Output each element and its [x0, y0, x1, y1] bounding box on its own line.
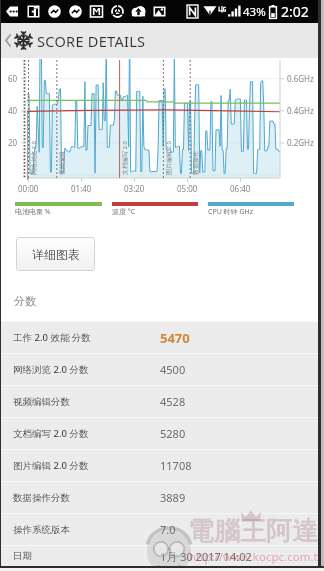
staticText: 1月 30 2017 14:02 — [160, 549, 252, 564]
button[interactable]: 视频编辑分数 — [1, 386, 318, 417]
button[interactable]: 数据操作分数 — [1, 482, 318, 513]
staticText: SCORE DETAILS — [37, 31, 146, 51]
button[interactable]: 文档编写 2.0 分数 — [1, 418, 318, 449]
staticText: 数据操作分数 — [13, 492, 70, 504]
staticText: 视频编辑分数 — [13, 396, 70, 408]
staticText: CPU 时钟 GHz — [208, 207, 253, 217]
staticText: 4528 — [160, 394, 186, 409]
staticText: 操作系统版本 — [13, 524, 70, 536]
staticText: 图片编辑 2.0 分数 — [13, 459, 89, 472]
button[interactable]: 网络浏览 2.0 分数 — [1, 354, 318, 385]
staticText: 7.0 — [160, 522, 176, 537]
staticText: 分数 — [14, 294, 36, 308]
button[interactable]: 图片编辑 2.0 分数 — [1, 450, 318, 481]
staticText: 温度 °C — [112, 207, 136, 217]
staticText: 网络浏览 2.0 分数 — [13, 363, 89, 376]
staticText: 3889 — [160, 490, 186, 505]
staticText: 电池电量 % — [15, 207, 51, 217]
staticText: 日期 — [13, 550, 32, 562]
staticText: 详细图表 — [32, 247, 80, 262]
button[interactable]: 详细图表 — [16, 237, 95, 271]
staticText: 43% — [243, 4, 266, 20]
staticText: 4500 — [160, 362, 186, 377]
staticText: 11708 — [160, 458, 192, 473]
staticText: 2:02 — [281, 2, 309, 21]
button[interactable]: 操作系统版本 — [1, 514, 318, 545]
button[interactable]: Back — [1, 23, 14, 58]
staticText: 文档编写 2.0 分数 — [13, 427, 89, 440]
button[interactable]: 日期 — [1, 546, 318, 566]
button[interactable]: 工作 2.0 效能 分数 — [1, 322, 318, 353]
staticText: 5280 — [160, 426, 186, 441]
staticText: 5470 — [160, 329, 190, 347]
staticText: 工作 2.0 效能 分数 — [13, 331, 91, 344]
